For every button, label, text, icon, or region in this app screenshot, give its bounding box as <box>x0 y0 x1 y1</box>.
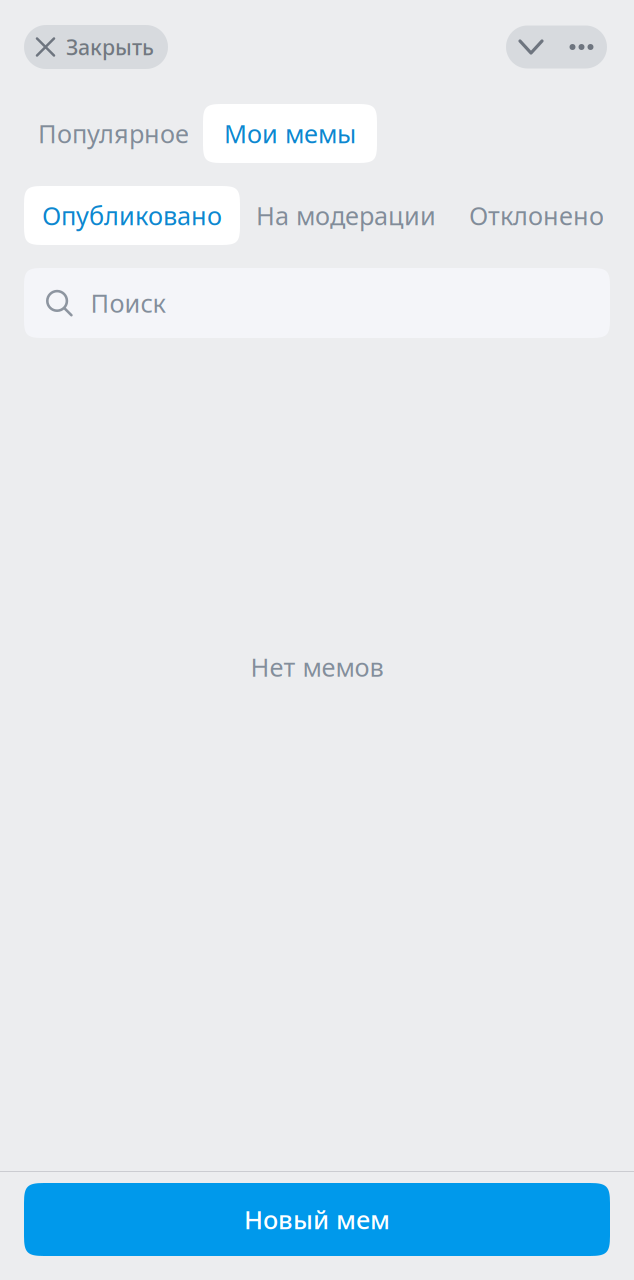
button[interactable]: Популярное <box>24 104 203 163</box>
staticText: Опубликовано <box>42 199 222 232</box>
staticText: Отклонено <box>469 199 604 232</box>
button[interactable]: Мои мемы <box>203 104 377 163</box>
button[interactable]: Ещё <box>556 25 607 68</box>
button[interactable]: Закрыть <box>24 25 168 69</box>
button[interactable]: Новый мем <box>24 1183 610 1256</box>
staticText: Новый мем <box>244 1203 390 1236</box>
button[interactable]: Свернуть <box>506 25 556 68</box>
staticText: Закрыть <box>66 33 154 61</box>
staticText: Нет мемов <box>250 650 383 684</box>
button[interactable]: На модерации <box>240 186 452 245</box>
staticText: Популярное <box>38 117 189 150</box>
staticText: Поиск <box>90 286 165 320</box>
button[interactable]: Опубликовано <box>24 186 240 245</box>
button[interactable]: Отклонено <box>452 186 621 245</box>
staticText: На модерации <box>256 199 436 232</box>
button[interactable]: Поиск <box>24 268 610 338</box>
staticText: Мои мемы <box>224 117 356 150</box>
